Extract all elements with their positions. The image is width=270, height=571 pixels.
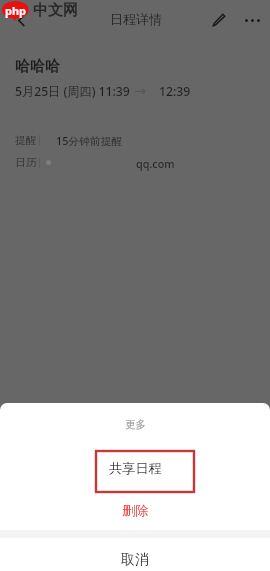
button[interactable]: 共享日程 bbox=[0, 446, 270, 490]
button[interactable]: 删除 bbox=[0, 490, 270, 530]
button[interactable]: Edit bbox=[204, 5, 234, 35]
button[interactable]: Back bbox=[6, 5, 36, 35]
button[interactable]: More options bbox=[237, 5, 267, 35]
staticText: 删除 bbox=[122, 502, 149, 519]
staticText: 日程详情 bbox=[110, 11, 162, 27]
staticText: 更多 bbox=[125, 418, 146, 431]
staticText: 共享日程 bbox=[109, 460, 162, 477]
staticText: 15分钟前提醒 bbox=[56, 133, 123, 148]
button[interactable]: 取消 bbox=[0, 538, 270, 571]
staticText: qq.com bbox=[136, 156, 175, 171]
staticText: 12:39 bbox=[159, 83, 191, 100]
staticText: 取消 bbox=[121, 551, 149, 569]
staticText: 5月25日 (周四) 11:39 bbox=[15, 83, 130, 100]
staticText: 提醒 bbox=[15, 134, 37, 148]
staticText: 中文网 bbox=[33, 1, 78, 20]
staticText: 日历 bbox=[15, 156, 37, 170]
staticText: 哈哈哈 bbox=[15, 57, 60, 76]
staticText: php bbox=[5, 3, 27, 18]
button[interactable]: Dismiss bbox=[0, 0, 270, 571]
